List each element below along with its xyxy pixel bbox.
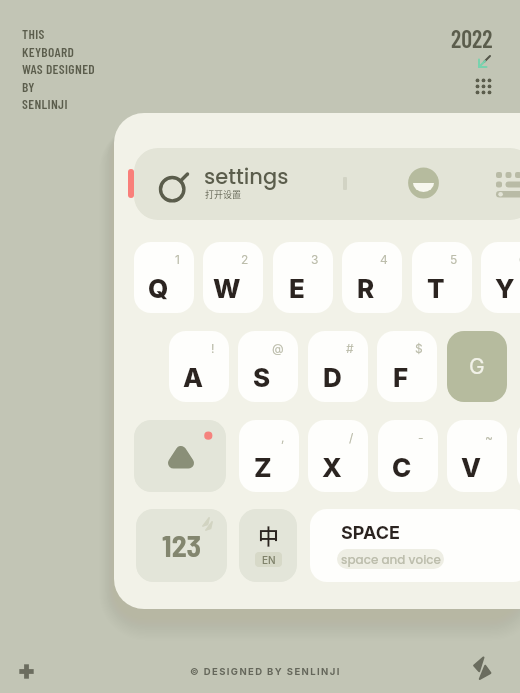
staticText: 6 bbox=[519, 252, 520, 267]
staticText: W bbox=[213, 273, 241, 304]
staticText: 4 bbox=[380, 252, 388, 267]
staticText: 打开设置 bbox=[205, 188, 242, 201]
staticText: C bbox=[392, 452, 412, 483]
button[interactable]: 4 bbox=[342, 242, 402, 313]
staticText: S bbox=[253, 362, 271, 393]
staticText: V bbox=[461, 452, 482, 483]
other: Scroll down bbox=[476, 54, 492, 70]
button[interactable]: 2 bbox=[203, 242, 263, 313]
staticText: 3 bbox=[311, 252, 319, 267]
staticText: Y bbox=[495, 273, 515, 304]
button[interactable]: @ bbox=[238, 331, 298, 402]
button[interactable]: 6 bbox=[481, 242, 520, 313]
staticText: X bbox=[322, 452, 342, 483]
staticText: ! bbox=[211, 341, 215, 356]
button[interactable]: , bbox=[239, 420, 299, 492]
button[interactable]: Shift bbox=[134, 420, 226, 492]
staticText: 2022 bbox=[451, 24, 493, 53]
staticText: # bbox=[346, 341, 354, 356]
button[interactable]: ~ bbox=[447, 420, 507, 492]
staticText: E bbox=[289, 273, 305, 304]
staticText: A bbox=[183, 362, 204, 393]
staticText: / bbox=[349, 430, 354, 445]
button[interactable]: / bbox=[308, 420, 368, 492]
button[interactable]: 123 bbox=[136, 509, 227, 582]
staticText: 1 bbox=[175, 252, 180, 267]
staticText: ~ bbox=[485, 430, 493, 445]
staticText: R bbox=[357, 273, 375, 304]
staticText: @ bbox=[272, 341, 284, 356]
button[interactable]: Add bbox=[17, 662, 36, 681]
staticText: F bbox=[393, 362, 409, 393]
button[interactable]: Keyboard bbox=[496, 172, 520, 214]
staticText: D bbox=[323, 362, 342, 393]
other: Logo bbox=[470, 654, 496, 680]
staticText: space and voice bbox=[341, 551, 441, 568]
button[interactable]: $ bbox=[377, 331, 437, 402]
staticText: Q bbox=[148, 273, 169, 304]
button[interactable]: 1 bbox=[134, 242, 194, 313]
button[interactable]: Emoji bbox=[408, 168, 440, 200]
staticText: SENLINJI bbox=[22, 95, 68, 111]
staticText: $ bbox=[415, 341, 423, 356]
staticText: KEYBOARD bbox=[22, 43, 75, 59]
button[interactable]: # bbox=[308, 331, 368, 402]
button[interactable]: 3 bbox=[273, 242, 333, 313]
button[interactable]: B bbox=[517, 420, 520, 492]
staticText: G bbox=[469, 354, 485, 379]
staticText: 123 bbox=[162, 527, 201, 563]
staticText: BY bbox=[22, 78, 35, 94]
staticText: 2 bbox=[241, 252, 249, 267]
button[interactable]: - bbox=[378, 420, 438, 492]
staticText: THIS bbox=[22, 25, 45, 41]
staticText: WAS DESIGNED bbox=[22, 60, 96, 76]
button[interactable]: 5 bbox=[412, 242, 472, 313]
staticText: EN bbox=[262, 554, 276, 566]
staticText: T bbox=[427, 273, 445, 304]
other: Apps bbox=[474, 77, 494, 97]
staticText: settings bbox=[204, 162, 289, 191]
staticText: , bbox=[281, 430, 285, 445]
button[interactable]: settings bbox=[134, 148, 520, 220]
button[interactable]: SPACE bbox=[310, 509, 520, 582]
button[interactable]: G bbox=[447, 331, 507, 402]
staticText: - bbox=[418, 430, 424, 445]
staticText: © DESIGNED BY SENLINJI bbox=[190, 666, 341, 677]
staticText: 中 bbox=[258, 520, 279, 550]
button[interactable]: ! bbox=[169, 331, 229, 402]
staticText: Z bbox=[254, 452, 272, 483]
staticText: SPACE bbox=[341, 522, 400, 544]
button[interactable]: 中 bbox=[239, 509, 297, 582]
staticText: 5 bbox=[450, 252, 458, 267]
